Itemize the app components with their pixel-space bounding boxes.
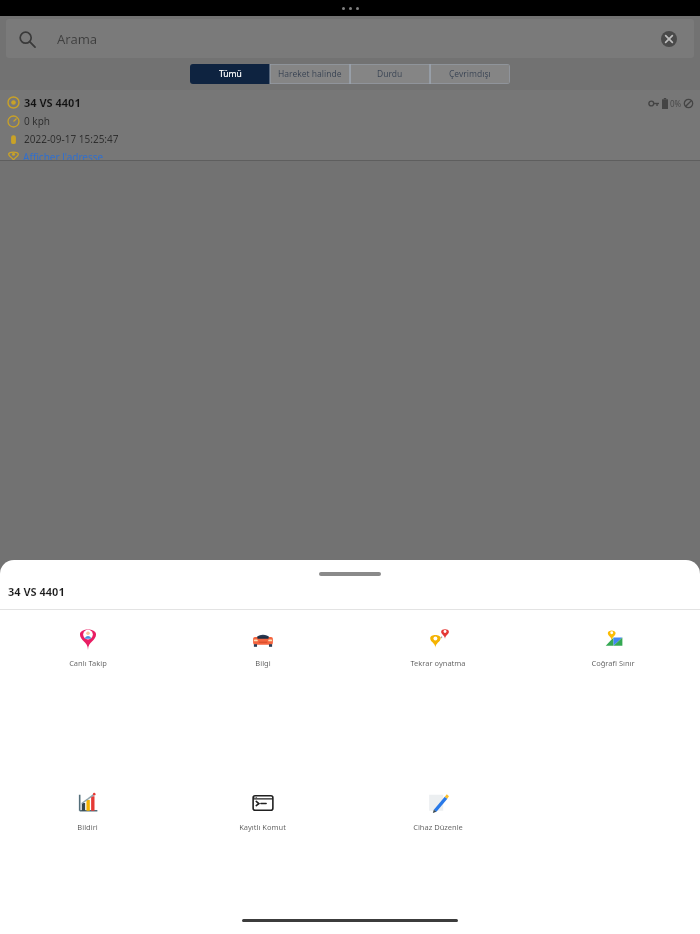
staticText: Coğrafi Sınır (591, 658, 635, 668)
other: Ignition (648, 98, 659, 109)
button[interactable]: Search (6, 19, 694, 58)
other: Search (16, 28, 38, 50)
button[interactable]: Bilgi (175, 624, 350, 670)
button[interactable]: 34 VS 4401 (0, 90, 700, 161)
other: Battery (662, 98, 668, 109)
staticText: Afficher l'adresse (23, 150, 104, 161)
staticText: 2022-09-17 15:25:47 (24, 132, 119, 146)
staticText: Kayıtlı Komut (239, 822, 286, 832)
staticText: 0% (670, 98, 682, 109)
staticText: Çevrimdışı (449, 68, 491, 80)
staticText: Tekrar oynatma (410, 658, 466, 668)
button[interactable]: Hareket halinde (270, 64, 350, 84)
staticText: Hareket halinde (278, 68, 342, 80)
button[interactable]: Clear search (658, 28, 680, 50)
staticText: Bildiri (77, 822, 98, 832)
button[interactable]: Canlı Takip (0, 624, 175, 670)
button[interactable]: Coğrafi Sınır (525, 624, 700, 670)
button[interactable]: Bildiri (0, 788, 175, 834)
button[interactable]: Tekrar oynatma (350, 624, 525, 670)
other: No signal (683, 98, 694, 109)
staticText: Durdu (377, 68, 403, 80)
button[interactable]: Kayıtlı Komut (175, 788, 350, 834)
staticText: 34 VS 4401 (24, 95, 81, 110)
staticText: 34 VS 4401 (8, 584, 65, 599)
button[interactable]: Cihaz Düzenle (350, 788, 525, 834)
staticText: Cihaz Düzenle (413, 822, 463, 832)
staticText: Tümü (219, 68, 242, 80)
staticText: Canlı Takip (69, 658, 107, 668)
button[interactable]: Çevrimdışı (430, 64, 510, 84)
staticText: Bilgi (255, 658, 271, 668)
staticText: Arama (57, 30, 98, 48)
staticText: 0 kph (24, 114, 50, 128)
button[interactable]: Afficher l'adresse (8, 150, 104, 161)
button[interactable]: Durdu (350, 64, 430, 84)
button[interactable]: Tümü (190, 64, 270, 84)
